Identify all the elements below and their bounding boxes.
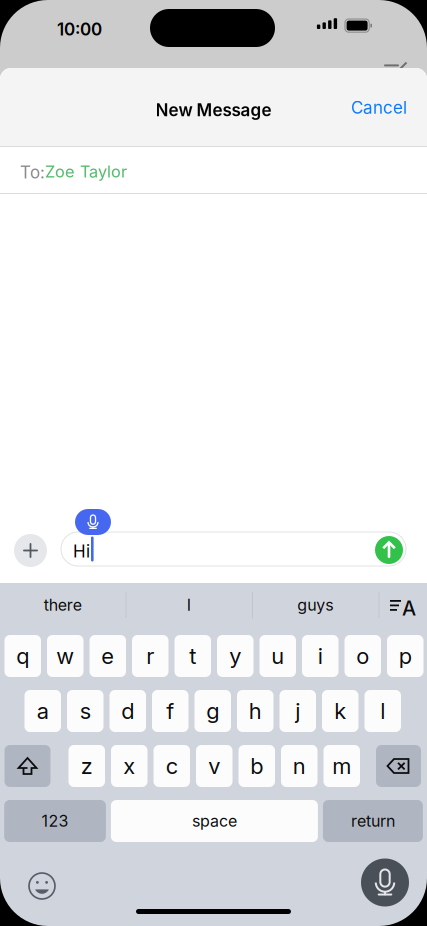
staticText: v [208, 753, 220, 779]
staticText: return [351, 811, 395, 831]
staticText: b [250, 753, 263, 779]
staticText: k [334, 698, 346, 724]
button[interactable]: x [111, 745, 147, 787]
button[interactable]: guys [252, 583, 378, 627]
button[interactable]: n [281, 745, 317, 787]
staticText: Cancel [351, 97, 407, 118]
staticText: To: [20, 162, 45, 183]
button[interactable]: Add attachment [14, 534, 47, 567]
button[interactable]: space [111, 800, 318, 842]
button[interactable]: e [89, 635, 126, 677]
button[interactable]: Cancel [331, 85, 427, 129]
button[interactable]: g [194, 690, 231, 732]
staticText: i [318, 643, 323, 669]
button[interactable]: Dictation [75, 509, 111, 535]
staticText: Zoe Taylor [45, 162, 127, 181]
staticText: h [249, 698, 262, 724]
button[interactable]: l [364, 690, 401, 732]
button[interactable]: t [174, 635, 211, 677]
button[interactable]: i [302, 635, 338, 677]
button[interactable]: h [237, 690, 273, 732]
staticText: y [229, 643, 241, 669]
button[interactable]: b [238, 745, 275, 787]
staticText: 10:00 [57, 19, 102, 40]
staticText: t [189, 643, 196, 669]
button[interactable]: I [125, 583, 252, 627]
staticText: Hi [73, 541, 90, 562]
staticText: n [293, 753, 306, 779]
button[interactable]: y [217, 635, 253, 677]
button[interactable]: Delete [376, 745, 421, 787]
button[interactable]: Hi [61, 532, 406, 566]
button[interactable]: q [4, 635, 41, 677]
button[interactable]: Shift [4, 745, 50, 787]
button[interactable]: Formatting options [379, 583, 427, 627]
staticText: 123 [42, 811, 69, 831]
staticText: x [123, 753, 135, 779]
button[interactable]: a [24, 690, 61, 732]
button[interactable]: d [109, 690, 146, 732]
button[interactable]: To: [0, 147, 427, 194]
button[interactable]: Emoji keyboard [27, 871, 57, 901]
staticText: z [81, 753, 93, 779]
staticText: c [166, 753, 178, 779]
staticText: d [121, 698, 134, 724]
button[interactable]: f [152, 690, 188, 732]
button[interactable]: r [132, 635, 168, 677]
button[interactable]: z [68, 745, 105, 787]
button[interactable]: o [344, 635, 381, 677]
button[interactable]: w [47, 635, 83, 677]
staticText: j [295, 698, 300, 724]
button[interactable]: u [259, 635, 296, 677]
staticText: f [166, 698, 174, 724]
staticText: there [44, 595, 82, 615]
staticText: g [206, 698, 219, 724]
button[interactable]: j [279, 690, 316, 732]
staticText: m [332, 753, 351, 779]
staticText: r [146, 643, 154, 669]
button[interactable]: v [196, 745, 232, 787]
staticText: p [399, 643, 412, 669]
button[interactable]: k [322, 690, 358, 732]
button[interactable]: c [153, 745, 190, 787]
staticText: New Message [155, 100, 271, 120]
staticText: I [187, 595, 191, 615]
button[interactable]: m [323, 745, 360, 787]
staticText: a [37, 698, 49, 724]
staticText: q [16, 643, 29, 669]
button[interactable]: 123 [4, 800, 106, 842]
staticText: w [56, 643, 74, 669]
staticText: guys [297, 595, 333, 615]
staticText: e [101, 643, 114, 669]
button[interactable]: Send [375, 536, 403, 564]
staticText: space [192, 811, 237, 831]
button[interactable]: Dictation [361, 858, 409, 906]
staticText: s [80, 698, 91, 724]
button[interactable]: p [387, 635, 423, 677]
button[interactable]: return [323, 800, 423, 842]
button[interactable]: there [0, 583, 125, 627]
staticText: l [380, 698, 385, 724]
staticText: A [402, 596, 416, 620]
staticText: u [271, 643, 284, 669]
staticText: o [356, 643, 369, 669]
button[interactable]: s [67, 690, 103, 732]
